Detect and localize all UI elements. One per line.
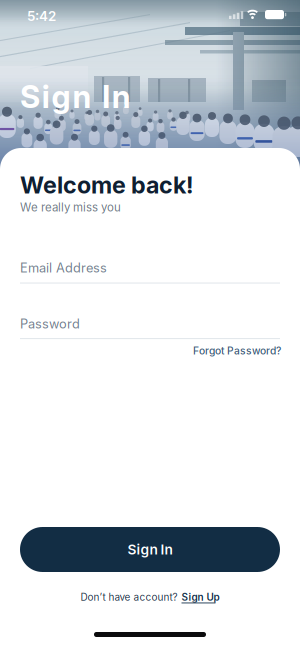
staticText: Sign Up [181,591,219,603]
staticText: Password [20,316,80,331]
staticText: Don’t have account? [80,591,177,603]
button[interactable]: Password [20,316,280,340]
staticText: We really miss you [20,200,121,214]
staticText: Welcome back! [20,171,193,199]
button[interactable]: Sign Up [181,591,219,603]
staticText: Sign In [20,78,131,116]
button[interactable]: Forgot Password? [193,344,281,357]
button[interactable]: Email Address [20,260,280,284]
staticText: Email Address [20,260,107,275]
button[interactable]: Sign In [20,527,280,572]
staticText: Sign In [127,541,172,558]
staticText: 5:42 [27,8,56,24]
staticText: Forgot Password? [193,344,281,357]
